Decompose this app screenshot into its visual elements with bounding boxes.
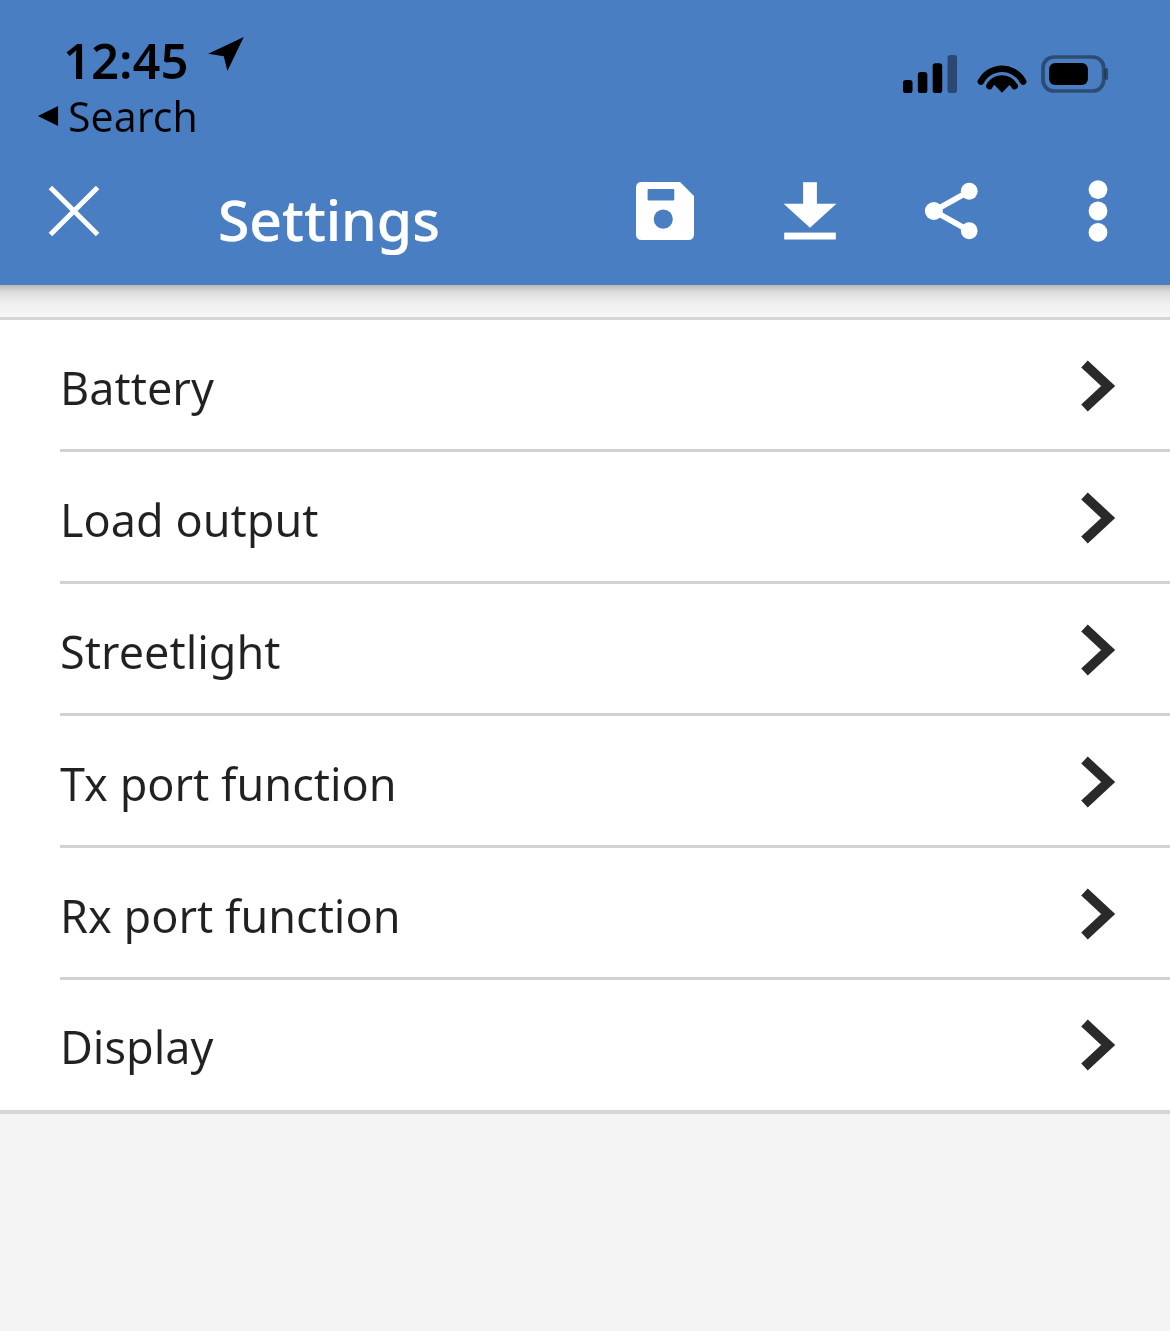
button[interactable]: Display: [0, 980, 1170, 1110]
button[interactable]: Load output: [0, 452, 1170, 584]
button[interactable]: Save: [615, 158, 715, 264]
staticText: Load output: [60, 489, 319, 550]
button[interactable]: Search: [36, 88, 198, 144]
button[interactable]: Tx port function: [0, 716, 1170, 848]
button[interactable]: Rx port function: [0, 848, 1170, 980]
staticText: 12:45: [63, 27, 189, 94]
staticText: Tx port function: [60, 753, 397, 814]
staticText: Settings: [218, 180, 440, 258]
button[interactable]: Share: [903, 158, 1003, 264]
button[interactable]: Download: [760, 158, 860, 264]
staticText: Rx port function: [60, 885, 401, 946]
button[interactable]: Close: [24, 158, 124, 264]
staticText: Search: [68, 88, 198, 144]
button[interactable]: Battery: [0, 320, 1170, 452]
button[interactable]: More options: [1048, 158, 1148, 264]
staticText: Streetlight: [60, 621, 281, 682]
staticText: Battery: [60, 357, 214, 418]
button[interactable]: Streetlight: [0, 584, 1170, 716]
staticText: Display: [60, 1016, 214, 1077]
